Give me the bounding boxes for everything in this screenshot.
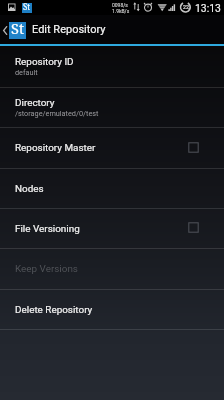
button[interactable]: Directory [0, 88, 224, 127]
button[interactable]: Repository Master [0, 128, 224, 168]
button[interactable]: File Versioning [0, 209, 224, 248]
button[interactable]: Repository ID [0, 46, 224, 87]
staticText: St [23, 1, 31, 11]
button[interactable]: Toggle File Versioning [188, 222, 199, 233]
staticText: Repository Master [15, 142, 96, 154]
staticText: default [15, 68, 38, 77]
staticText: Nodes [15, 183, 44, 195]
button[interactable]: Nodes [0, 169, 224, 208]
button[interactable]: Keep Versions [0, 249, 224, 289]
staticText: 0098/s [112, 2, 128, 8]
staticText: Edit Repository [32, 23, 106, 36]
button[interactable]: Navigate up [0, 15, 31, 44]
staticText: Directory [15, 97, 55, 109]
staticText: 22 [183, 4, 189, 10]
staticText: Keep Versions [15, 263, 78, 275]
staticText: 13:13 [195, 2, 221, 14]
staticText: Delete Repository [15, 304, 93, 316]
button[interactable]: Toggle Repository Master [188, 142, 199, 153]
staticText: Repository ID [15, 56, 74, 68]
staticText: File Versioning [15, 223, 80, 235]
button[interactable]: Delete Repository [0, 290, 224, 329]
staticText: St [11, 18, 24, 35]
staticText: /storage/emulated/0/test [15, 109, 99, 118]
staticText: 1.9kB/s [112, 8, 130, 14]
